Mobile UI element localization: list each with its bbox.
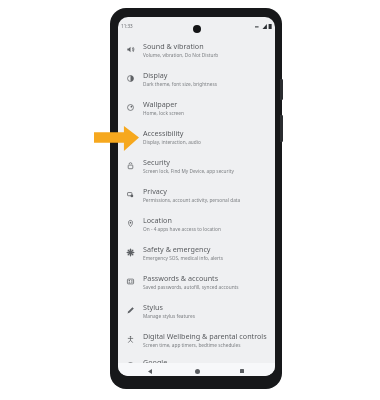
- staticText: Google: [143, 357, 168, 367]
- staticText: On - 4 apps have access to location: [143, 226, 221, 232]
- staticText: Privacy: [143, 186, 167, 196]
- button[interactable]: Location: [118, 209, 275, 238]
- staticText: Permissions, account activity, personal …: [143, 197, 241, 203]
- staticText: Services & preferences: [143, 368, 194, 374]
- staticText: Sound & vibration: [143, 41, 204, 51]
- staticText: Display, interaction, audio: [143, 139, 201, 145]
- staticText: Accessibility: [143, 128, 184, 138]
- staticText: Digital Wellbeing & parental controls: [143, 331, 267, 341]
- button[interactable]: Google: [118, 354, 275, 376]
- staticText: Location: [143, 215, 172, 225]
- button[interactable]: Safety & emergency: [118, 238, 275, 267]
- button[interactable]: Passwords & accounts: [118, 267, 275, 296]
- staticText: Volume, vibration, Do Not Disturb: [143, 52, 219, 58]
- staticText: Wallpaper: [143, 99, 178, 109]
- button[interactable]: Recent apps: [236, 365, 248, 376]
- button[interactable]: Stylus: [118, 296, 275, 325]
- button[interactable]: Home: [191, 365, 203, 376]
- button[interactable]: Privacy: [118, 180, 275, 209]
- staticText: Stylus: [143, 302, 163, 312]
- staticText: Emergency SOS, medical info, alerts: [143, 255, 223, 261]
- button[interactable]: Sound & vibration: [118, 35, 275, 64]
- button[interactable]: Digital Wellbeing & parental controls: [118, 325, 275, 354]
- staticText: Home, lock screen: [143, 110, 184, 116]
- button[interactable]: Wallpaper: [118, 93, 275, 122]
- staticText: Screen time, app timers, bedtime schedul…: [143, 342, 241, 348]
- staticText: Display: [143, 70, 168, 80]
- staticText: Manage stylus features: [143, 313, 195, 319]
- staticText: Passwords & accounts: [143, 273, 219, 283]
- button[interactable]: Display: [118, 64, 275, 93]
- button[interactable]: Security: [118, 151, 275, 180]
- button[interactable]: Accessibility: [118, 122, 275, 151]
- staticText: 11:33: [121, 23, 133, 29]
- staticText: Dark theme, font size, brightness: [143, 81, 217, 87]
- staticText: Screen lock, Find My Device, app securit…: [143, 168, 234, 174]
- button[interactable]: Back: [144, 365, 156, 376]
- staticText: Safety & emergency: [143, 244, 211, 254]
- staticText: Security: [143, 157, 170, 167]
- staticText: Saved passwords, autofill, synced accoun…: [143, 284, 239, 290]
